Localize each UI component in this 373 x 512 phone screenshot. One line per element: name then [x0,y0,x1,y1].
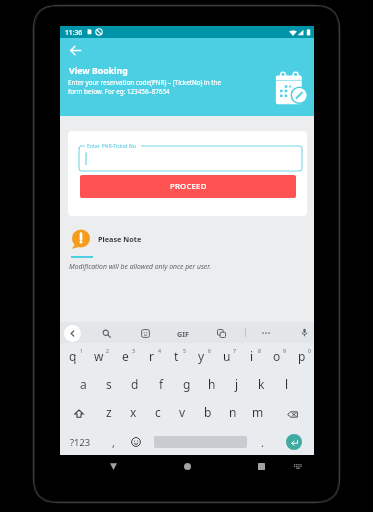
staticText: 5 [183,347,186,354]
button[interactable]: Shift [60,400,97,428]
staticText: a [80,376,87,392]
staticText: PROCEED [170,181,207,192]
staticText: Enter your reservation code(PNR) – (Tick… [68,78,243,96]
button[interactable]: Home [180,459,194,473]
staticText: f [159,376,164,392]
staticText: Enter PNR-Ticket No [87,142,136,149]
staticText: l [285,376,289,392]
staticText: y [198,348,205,364]
button[interactable]: Back [106,459,120,473]
button[interactable]: v [170,400,195,428]
staticText: u [223,348,231,364]
button[interactable]: PROCEED [80,175,296,198]
staticText: r [149,348,154,364]
staticText: ?123 [70,436,91,449]
button[interactable]: Search [100,327,112,339]
button[interactable]: h [199,372,224,400]
staticText: , [112,435,115,450]
button[interactable]: q [60,343,86,372]
button[interactable]: r [138,343,164,372]
staticText: p [298,348,306,364]
button[interactable]: Back [62,37,88,63]
staticText: k [258,376,265,392]
button[interactable]: . [251,428,273,456]
staticText: View Booking [69,65,128,77]
button[interactable]: Recent apps [254,459,268,473]
staticText: 6 [208,347,211,354]
button[interactable]: b [195,400,220,428]
button[interactable]: p [289,343,314,372]
button[interactable]: Hide keyboard [291,460,305,472]
button[interactable]: Translate [215,327,227,339]
staticText: h [208,376,216,392]
button[interactable]: o [264,343,289,372]
staticText: s [106,376,112,392]
button[interactable]: k [249,372,274,400]
staticText: d [131,376,139,392]
button[interactable]: l [274,372,299,400]
button[interactable]: Enter [286,434,302,450]
staticText: o [273,348,281,364]
button[interactable]: m [245,400,270,428]
staticText: . [261,435,264,450]
staticText: 3 [132,347,135,354]
button[interactable]: Backspace [270,400,314,428]
button[interactable]: Expand toolbar [64,325,81,342]
button[interactable]: Stickers [139,327,151,339]
button[interactable]: a [70,372,96,400]
staticText: 8 [258,347,261,354]
staticText: j [235,376,239,392]
button[interactable]: Emoji [125,428,147,456]
staticText: Please Note [98,234,142,244]
staticText: b [204,404,212,420]
button[interactable]: w [86,343,112,372]
staticText: t [174,348,179,364]
staticText: c [155,404,161,420]
button[interactable]: d [122,372,148,400]
button[interactable]: i [239,343,264,372]
staticText: v [179,404,186,420]
staticText: 1 [80,347,83,354]
button[interactable]: z [97,400,121,428]
button[interactable]: e [112,343,138,372]
button[interactable]: GIF [177,329,189,339]
staticText: 2 [106,347,109,354]
button[interactable]: g [174,372,199,400]
staticText: w [94,348,104,364]
button[interactable]: t [164,343,189,372]
button[interactable]: , [102,428,124,456]
staticText: 7 [233,347,236,354]
button[interactable]: Voice input [298,326,310,338]
staticText: Modification will be allowed only once p… [69,262,211,271]
button[interactable]: ?123 [66,428,95,456]
button[interactable]: j [224,372,249,400]
staticText: 11:36 [65,28,83,37]
staticText: x [130,404,137,420]
staticText: 0 [308,347,311,354]
button[interactable]: c [145,400,170,428]
button[interactable]: f [148,372,174,400]
button[interactable]: x [121,400,145,428]
button[interactable]: u [214,343,239,372]
staticText: 9 [283,347,286,354]
staticText: g [183,376,191,392]
staticText: z [106,404,112,420]
staticText: q [69,348,77,364]
button[interactable]: y [189,343,214,372]
staticText: e [122,348,129,364]
button[interactable]: s [96,372,122,400]
button[interactable]: More options [260,327,272,339]
button[interactable]: n [220,400,245,428]
staticText: m [252,404,264,420]
staticText: i [250,348,254,364]
staticText: 4 [158,347,161,354]
staticText: n [229,404,237,420]
